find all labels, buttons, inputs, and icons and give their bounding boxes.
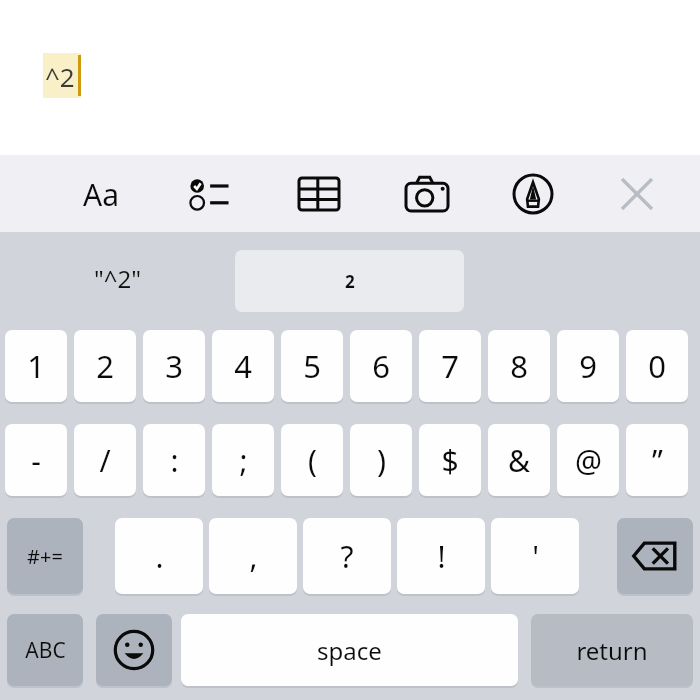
staticText: 7 [441,345,459,387]
button[interactable]: $ [419,424,481,496]
button[interactable]: ? [303,518,391,594]
button[interactable]: "^2" [78,253,158,303]
staticText: 3 [165,345,183,387]
button[interactable]: 1 [5,330,67,402]
button[interactable]: Aa [70,165,132,223]
button[interactable]: & [488,424,550,496]
button[interactable]: ! [397,518,485,594]
staticText: ^2 [45,59,75,94]
staticText: 2 [345,270,355,293]
button[interactable]: ' [491,518,579,594]
button[interactable]: 2 [74,330,136,402]
staticText: . [155,536,164,577]
staticText: @ [575,440,602,481]
button[interactable]: 7 [419,330,481,402]
button[interactable]: . [115,518,203,594]
button[interactable]: Backspace [617,518,693,594]
button[interactable]: Table [288,165,350,223]
button[interactable]: 8 [488,330,550,402]
button[interactable]: ) [350,424,412,496]
staticText: 9 [579,345,597,387]
staticText: return [576,634,648,667]
staticText: 5 [303,345,321,387]
button[interactable]: Camera [396,165,458,223]
staticText: , [249,536,258,577]
button[interactable]: / [74,424,136,496]
button[interactable]: 0 [626,330,688,402]
button[interactable]: ; [212,424,274,496]
button[interactable]: : [143,424,205,496]
button[interactable]: ” [626,424,688,496]
button[interactable]: 3 [143,330,205,402]
button[interactable]: @ [557,424,619,496]
staticText: 8 [510,345,528,387]
staticText: - [31,440,41,481]
button[interactable]: 2 [235,250,464,312]
staticText: 6 [372,345,390,387]
staticText: Aa [83,174,119,215]
staticText: 1 [27,345,45,387]
button[interactable]: ABC [7,614,83,686]
button[interactable]: 4 [212,330,274,402]
button[interactable]: ( [281,424,343,496]
button[interactable]: Close [608,165,666,223]
button[interactable]: Emoji [96,614,172,686]
staticText: ABC [25,636,66,665]
staticText: ? [340,536,354,577]
staticText: ; [239,440,248,481]
button[interactable]: 9 [557,330,619,402]
button[interactable]: 6 [350,330,412,402]
staticText: #+= [27,543,63,570]
staticText: 4 [234,345,252,387]
staticText: ( [308,440,317,481]
staticText: $ [441,440,459,481]
staticText: / [99,440,111,481]
staticText: ! [437,536,446,577]
staticText: 0 [648,345,666,387]
staticText: ” [652,440,663,481]
staticText: & [508,440,530,481]
button[interactable]: return [531,614,693,686]
staticText: 2 [96,345,114,387]
button[interactable]: Markup [502,165,564,223]
staticText: "^2" [94,262,142,295]
button[interactable]: , [209,518,297,594]
button[interactable]: #+= [7,518,83,594]
staticText: ) [377,440,386,481]
staticText: space [317,634,382,667]
staticText: ' [532,536,539,577]
button[interactable]: - [5,424,67,496]
button[interactable]: space [181,614,518,686]
button[interactable]: 5 [281,330,343,402]
staticText: : [170,440,179,481]
button[interactable]: Checklist [180,165,242,223]
